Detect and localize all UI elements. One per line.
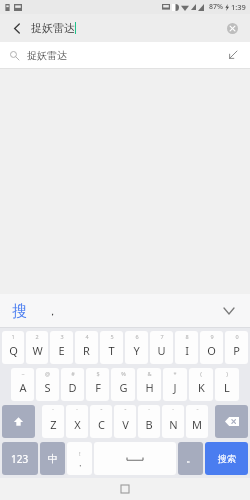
staticText: 87% [209,2,223,12]
staticText: C [98,417,105,432]
staticText: 4 [85,333,89,340]
button[interactable]: Search [205,442,248,475]
staticText: 0 [235,333,239,340]
button[interactable]: & [137,368,161,401]
staticText: U [157,343,166,358]
button[interactable]: 123 [2,442,38,475]
staticText: Q [9,343,18,358]
button[interactable]: ˇ [114,405,136,438]
staticText: 7 [160,333,164,340]
staticText: ˊ [76,407,78,414]
staticText: 2 [35,333,39,340]
staticText: X [74,417,81,432]
staticText: N [169,417,178,432]
staticText: K [198,380,205,395]
staticText: 8 [185,333,189,340]
button[interactable]: ， [43,304,62,318]
staticText: J [173,380,177,395]
staticText: 1:39 [231,2,246,12]
staticText: D [68,380,77,395]
button[interactable]: Back [8,19,26,37]
staticText: P [233,343,240,358]
staticText: ， [76,458,84,468]
button[interactable]: 。 [178,442,203,475]
staticText: 搜 [12,302,27,321]
button[interactable]: # [61,368,84,401]
staticText: 捉妖雷达 [27,49,67,62]
staticText: ˋ [172,407,174,414]
button[interactable]: 7 [150,331,173,364]
button[interactable]: 5 [100,331,123,364]
button[interactable]: ˉ [186,405,208,438]
staticText: R [83,343,90,358]
staticText: O [207,343,216,358]
staticText: 。 [186,452,196,465]
staticText: M [192,417,202,432]
button[interactable]: 2 [26,331,48,364]
staticText: Z [50,417,57,432]
staticText: S [44,380,51,395]
staticText: $ [96,370,100,377]
staticText: % [121,370,126,377]
button[interactable]: * [163,368,187,401]
staticText: @ [45,370,50,377]
button[interactable]: Shift [2,405,35,438]
button[interactable]: ( [189,368,213,401]
button[interactable]: ~ [11,368,34,401]
staticText: T [108,343,115,358]
staticText: A [19,380,27,395]
button[interactable]: ´ [42,405,64,438]
staticText: H [145,380,154,395]
staticText: G [119,380,128,395]
button[interactable]: 0 [225,331,248,364]
staticText: & [147,370,152,377]
staticText: 搜索 [218,453,236,464]
button[interactable]: 搜 [10,302,29,321]
button[interactable]: Hide keyboard [218,300,240,322]
staticText: 1 [11,333,15,340]
staticText: Y [133,343,140,358]
button[interactable]: Home [115,479,135,499]
staticText: ˋ [148,407,150,414]
button[interactable]: $ [86,368,109,401]
staticText: L [224,380,230,395]
button[interactable]: ˊ [66,405,88,438]
button[interactable]: Backspace [215,405,248,438]
button[interactable]: 3 [50,331,73,364]
staticText: ´ [52,407,54,414]
staticText: ， [47,304,58,318]
staticText: # [71,370,75,377]
staticText: ~ [21,370,25,377]
button[interactable]: ) [215,368,239,401]
button[interactable]: ˋ [138,405,160,438]
staticText: B [145,417,153,432]
button[interactable]: 中 [40,442,65,475]
staticText: 9 [210,333,214,340]
staticText: ˉ [196,407,199,414]
button[interactable]: % [111,368,135,401]
button[interactable]: Clear [222,18,242,38]
button[interactable]: 6 [125,331,148,364]
button[interactable]: Punctuation [67,442,92,475]
staticText: I [185,343,189,358]
staticText: E [58,343,65,358]
button[interactable]: Space [94,442,176,475]
button[interactable]: 捉妖雷达 [0,42,250,68]
button[interactable]: ˇ [90,405,112,438]
button[interactable]: 8 [175,331,198,364]
staticText: ˇ [124,407,127,414]
staticText: ) [226,370,228,377]
button[interactable]: 9 [200,331,223,364]
button[interactable]: 1 [2,331,24,364]
staticText: V [122,417,129,432]
button[interactable]: ˋ [162,405,184,438]
staticText: W [32,343,43,358]
staticText: 中 [48,452,58,465]
staticText: ˇ [100,407,103,414]
button[interactable]: @ [36,368,59,401]
button[interactable]: 4 [75,331,98,364]
staticText: * [173,370,177,377]
staticText: 3 [60,333,64,340]
button[interactable]: Fill query [226,48,240,62]
staticText: ( [200,370,202,377]
